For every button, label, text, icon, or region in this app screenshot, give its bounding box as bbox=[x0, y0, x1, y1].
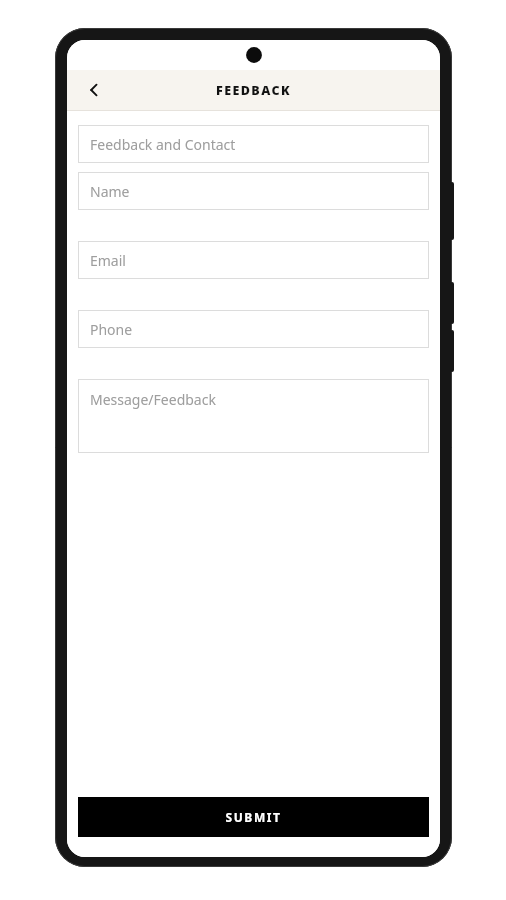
staticText: Phone bbox=[90, 320, 133, 339]
button[interactable]: Message/Feedback bbox=[78, 379, 429, 453]
staticText: SUBMIT bbox=[225, 809, 282, 825]
staticText: Message/Feedback bbox=[90, 390, 216, 409]
button[interactable]: Email bbox=[78, 241, 429, 279]
button[interactable]: Back bbox=[77, 73, 111, 107]
button[interactable]: Phone bbox=[78, 310, 429, 348]
button[interactable]: Name bbox=[78, 172, 429, 210]
staticText: Name bbox=[90, 182, 130, 201]
staticText: FEEDBACK bbox=[216, 82, 291, 99]
button[interactable]: Feedback and Contact bbox=[78, 125, 429, 163]
staticText: Feedback and Contact bbox=[90, 135, 236, 154]
staticText: Email bbox=[90, 251, 126, 270]
button[interactable]: SUBMIT bbox=[78, 797, 429, 837]
